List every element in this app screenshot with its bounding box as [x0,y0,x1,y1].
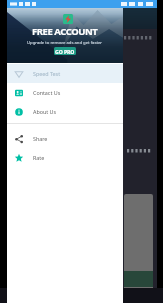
button[interactable]: Contact Us [7,83,123,102]
staticText: Share [33,135,48,142]
button[interactable]: About Us [7,102,123,121]
staticText: GO PRO [55,48,75,55]
button[interactable]: Speed Test [7,64,123,83]
staticText: FREE ACCOUNT [32,25,98,38]
staticText: About Us [33,108,57,115]
button[interactable]: GO PRO [54,47,76,55]
staticText: Upgrade to remove ads and get faster [27,39,103,45]
button[interactable]: Share [7,129,123,148]
staticText: Contact Us [33,89,61,96]
staticText: Rate [33,154,45,161]
button[interactable]: Rate [7,148,123,167]
staticText: Speed Test [33,70,61,77]
